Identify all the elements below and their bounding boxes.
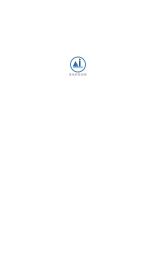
staticText: 某某科技有限 xyxy=(69,73,87,76)
